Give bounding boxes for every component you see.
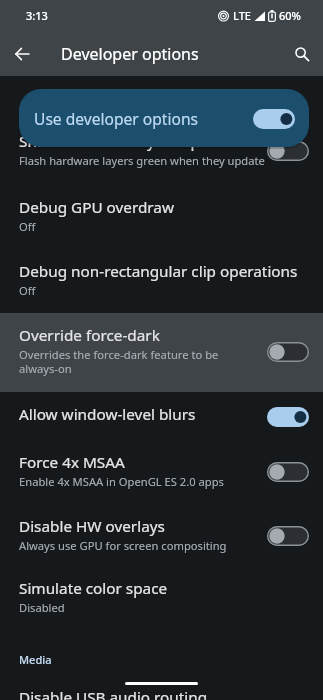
button[interactable]: Toggle off	[267, 526, 309, 546]
staticText: Disable USB audio routing	[19, 687, 208, 700]
staticText: Media	[19, 652, 52, 667]
button[interactable]: Toggle off	[267, 462, 309, 482]
button[interactable]: Simulate color space	[0, 578, 323, 614]
button[interactable]: Debug non-rectangular clip operations	[0, 261, 323, 297]
staticText: Allow window-level blurs	[19, 404, 196, 425]
staticText: 3:13	[26, 8, 48, 23]
staticText: Force 4x MSAA	[19, 452, 125, 473]
button[interactable]: Allow window-level blurs	[0, 404, 323, 425]
button[interactable]: Show hardware layers updates	[0, 131, 323, 167]
button[interactable]: Toggle off	[267, 342, 309, 362]
staticText: Always use GPU for screen compositing	[19, 538, 227, 553]
staticText: LTE	[233, 8, 251, 23]
staticText: Off	[19, 219, 36, 234]
staticText: Disabled	[19, 600, 65, 615]
staticText: Show hardware layers updates	[19, 131, 240, 152]
staticText: Debug non-rectangular clip operations	[19, 261, 298, 282]
staticText: Debug GPU overdraw	[19, 197, 174, 218]
staticText: Developer options	[61, 43, 199, 65]
button[interactable]: Toggle on	[253, 109, 295, 129]
staticText: Overrides the force-dark feature to be a…	[19, 347, 219, 376]
button[interactable]: Toggle on	[267, 407, 309, 427]
button[interactable]: Force 4x MSAA	[0, 452, 323, 488]
button[interactable]: Back	[2, 34, 42, 74]
button[interactable]: Debug GPU overdraw	[0, 197, 323, 233]
button[interactable]: Toggle off	[267, 141, 309, 161]
staticText: 60%	[279, 8, 301, 23]
staticText: Override force-dark	[19, 325, 160, 346]
button[interactable]: Use developer options	[19, 89, 309, 147]
button[interactable]: Disable HW overlays	[0, 516, 323, 552]
button[interactable]: Override force-dark	[0, 325, 323, 375]
staticText: Enable 4x MSAA in OpenGL ES 2.0 apps	[19, 474, 224, 489]
staticText: Flash hardware layers green when they up…	[19, 153, 265, 168]
staticText: Disable HW overlays	[19, 516, 165, 537]
staticText: Use developer options	[34, 108, 199, 129]
staticText: Simulate color space	[19, 578, 168, 599]
button[interactable]: Search	[282, 34, 322, 74]
button[interactable]: Disable USB audio routing	[0, 687, 323, 700]
staticText: Off	[19, 283, 36, 298]
